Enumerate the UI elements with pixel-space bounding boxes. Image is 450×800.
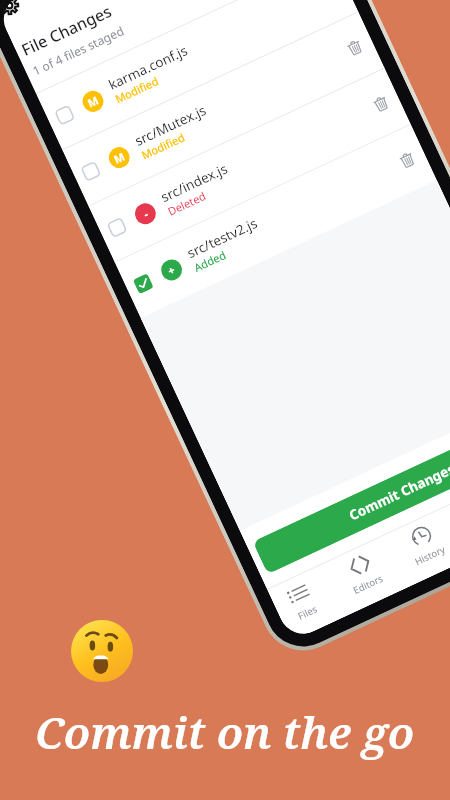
- button[interactable]: Stage file: [79, 159, 103, 183]
- staticText: History: [413, 543, 447, 568]
- button[interactable]: Stage file: [36, 0, 358, 149]
- staticText: Modified: [139, 129, 187, 162]
- button[interactable]: Stage file: [62, 12, 384, 206]
- button[interactable]: Delete: [356, 80, 404, 127]
- staticText: Deleted: [165, 188, 209, 219]
- staticText: Files: [296, 602, 319, 623]
- staticText: karma.conf.js: [105, 41, 191, 94]
- staticText: src/testv2.js: [184, 214, 261, 262]
- staticText: src/index.js: [158, 159, 231, 206]
- staticText: -: [141, 206, 151, 221]
- button[interactable]: Stage file: [53, 103, 77, 127]
- button[interactable]: Stage file: [115, 125, 437, 318]
- staticText: Modified: [113, 73, 161, 106]
- button[interactable]: Settings: [0, 0, 19, 15]
- staticText: M: [111, 148, 127, 167]
- button[interactable]: Delete: [330, 23, 378, 71]
- staticText: M: [85, 92, 101, 110]
- button[interactable]: Files: [267, 565, 346, 642]
- button[interactable]: History: [383, 507, 450, 587]
- button[interactable]: Stage file: [89, 68, 411, 262]
- button[interactable]: Stage file: [105, 216, 129, 239]
- staticText: src/Mutex.js: [132, 101, 209, 150]
- staticText: 1 of 4 files staged: [30, 22, 126, 78]
- staticText: Commit on the go: [35, 702, 415, 762]
- staticText: Editors: [351, 572, 386, 597]
- staticText: File Changes: [18, 0, 115, 61]
- button[interactable]: Commit Changes: [252, 409, 450, 574]
- staticText: Added: [191, 247, 228, 275]
- button[interactable]: Stage file: [131, 272, 155, 296]
- button[interactable]: Editors: [322, 536, 407, 616]
- button[interactable]: Delete: [383, 136, 430, 184]
- staticText: +: [165, 262, 178, 278]
- staticText: Commit Changes: [346, 459, 450, 524]
